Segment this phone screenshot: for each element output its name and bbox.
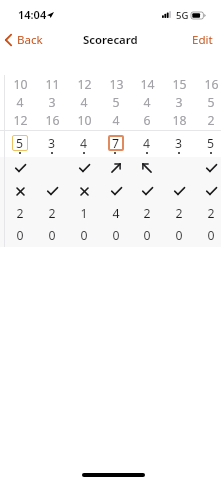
staticText: 5G <box>176 9 189 22</box>
staticText: 0 <box>80 227 88 244</box>
staticText: 12 <box>13 112 28 129</box>
staticText: 2 <box>143 205 151 222</box>
staticText: 4 <box>112 205 120 222</box>
staticText: 16 <box>45 112 60 129</box>
staticText: 5 <box>207 135 215 151</box>
staticText: 2 <box>207 205 215 222</box>
staticText: Scorecard <box>83 32 138 48</box>
staticText: 7 <box>112 135 120 151</box>
staticText: 15 <box>172 76 187 93</box>
staticText: 11 <box>45 76 60 93</box>
staticText: 3 <box>175 94 183 111</box>
staticText: 4 <box>143 135 151 151</box>
staticText: 5 <box>16 135 24 151</box>
staticText: Back <box>17 32 43 48</box>
staticText: 0 <box>207 227 215 244</box>
staticText: 2 <box>16 205 24 222</box>
staticText: 4 <box>143 94 151 111</box>
staticText: 14 <box>140 76 155 93</box>
staticText: Edit <box>192 32 213 48</box>
staticText: 3 <box>48 94 56 111</box>
staticText: 14:04 <box>18 7 47 22</box>
staticText: 2 <box>207 112 215 129</box>
staticText: 2 <box>175 205 183 222</box>
staticText: 0 <box>112 227 120 244</box>
button[interactable]: Edit <box>184 28 221 52</box>
staticText: 4 <box>80 135 88 151</box>
button[interactable]: Back <box>0 28 47 52</box>
staticText: 4 <box>16 94 24 111</box>
staticText: 12 <box>77 76 92 93</box>
staticText: 18 <box>172 112 187 129</box>
staticText: 10 <box>77 112 92 129</box>
staticText: 6 <box>143 112 151 129</box>
staticText: 0 <box>48 227 56 244</box>
staticText: 0 <box>16 227 24 244</box>
staticText: 4 <box>112 112 120 129</box>
staticText: 2 <box>48 205 56 222</box>
staticText: 3 <box>48 135 56 151</box>
staticText: 3 <box>175 135 183 151</box>
staticText: 13 <box>109 76 124 93</box>
staticText: 1 <box>80 205 88 222</box>
staticText: 10 <box>13 76 28 93</box>
staticText: 0 <box>175 227 183 244</box>
staticText: 0 <box>143 227 151 244</box>
staticText: 4 <box>80 94 88 111</box>
staticText: 5 <box>207 94 215 111</box>
staticText: 5 <box>112 94 120 111</box>
staticText: 16 <box>204 76 219 93</box>
